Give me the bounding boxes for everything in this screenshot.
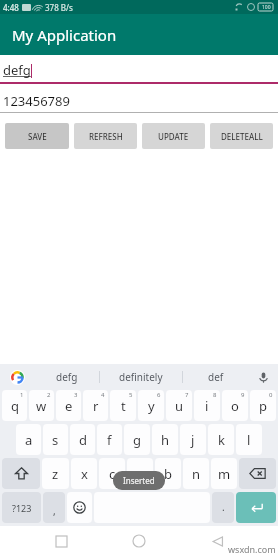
- staticText: 2: [47, 391, 51, 399]
- staticText: f: [107, 431, 112, 449]
- button[interactable]: Home: [122, 526, 156, 556]
- staticText: 8: [213, 391, 217, 399]
- staticText: m: [218, 465, 231, 483]
- button[interactable]: k: [208, 424, 234, 455]
- staticText: k: [218, 431, 225, 449]
- button[interactable]: f: [97, 424, 122, 455]
- staticText: h: [161, 431, 170, 449]
- button[interactable]: x: [71, 458, 97, 489]
- staticText: UPDATE: [158, 131, 189, 142]
- button[interactable]: c: [99, 458, 125, 489]
- staticText: 100: [262, 4, 271, 11]
- staticText: My Application: [12, 25, 117, 45]
- staticText: REFRESH: [89, 131, 123, 142]
- staticText: definitely: [119, 370, 163, 384]
- staticText: SAVE: [28, 131, 47, 142]
- button[interactable]: Shift: [2, 458, 40, 489]
- staticText: e: [65, 397, 73, 415]
- staticText: .: [222, 500, 225, 514]
- button[interactable]: Back: [200, 526, 234, 556]
- button[interactable]: z: [42, 458, 69, 489]
- button[interactable]: Google: [0, 364, 34, 390]
- staticText: y: [148, 397, 155, 415]
- staticText: defg: [3, 61, 31, 79]
- button[interactable]: Backspace: [239, 458, 276, 489]
- button[interactable]: a: [16, 424, 41, 455]
- button[interactable]: o: [222, 390, 248, 421]
- button[interactable]: ?123: [2, 492, 41, 523]
- staticText: ?123: [12, 502, 32, 514]
- staticText: defg: [56, 370, 78, 384]
- staticText: 123456789: [3, 92, 70, 110]
- button[interactable]: j: [180, 424, 206, 455]
- staticText: a: [25, 431, 33, 449]
- staticText: Inserted: [123, 475, 155, 486]
- button[interactable]: h: [152, 424, 178, 455]
- button[interactable]: t: [110, 390, 136, 421]
- button[interactable]: ,: [43, 492, 65, 523]
- staticText: t: [121, 397, 126, 415]
- button[interactable]: y: [138, 390, 164, 421]
- staticText: 5: [129, 391, 133, 399]
- staticText: d: [79, 431, 87, 449]
- button[interactable]: u: [166, 390, 192, 421]
- staticText: i: [205, 397, 209, 415]
- staticText: v: [137, 465, 144, 483]
- staticText: 4: [101, 391, 105, 399]
- staticText: 7: [185, 391, 189, 399]
- button[interactable]: .: [212, 492, 234, 523]
- staticText: 9: [241, 391, 245, 399]
- button[interactable]: Voice input: [248, 364, 278, 390]
- staticText: o: [231, 397, 239, 415]
- staticText: c: [109, 465, 116, 483]
- staticText: r: [93, 397, 99, 415]
- button[interactable]: d: [70, 424, 95, 455]
- button[interactable]: m: [211, 458, 237, 489]
- button[interactable]: REFRESH: [74, 123, 137, 149]
- staticText: s: [52, 431, 59, 449]
- button[interactable]: b: [155, 458, 181, 489]
- staticText: p: [259, 397, 267, 415]
- staticText: def: [208, 370, 224, 384]
- button[interactable]: w: [29, 390, 54, 421]
- button[interactable]: i: [194, 390, 220, 421]
- button[interactable]: n: [183, 458, 209, 489]
- button[interactable]: DELETEALL: [210, 123, 273, 149]
- staticText: j: [191, 431, 195, 449]
- button[interactable]: def: [183, 364, 248, 390]
- staticText: x: [81, 465, 88, 483]
- staticText: n: [192, 465, 201, 483]
- button[interactable]: UPDATE: [142, 123, 205, 149]
- staticText: b: [164, 465, 172, 483]
- staticText: u: [175, 397, 184, 415]
- staticText: wsxdn.com: [228, 543, 276, 555]
- staticText: l: [247, 431, 251, 449]
- staticText: ,: [53, 504, 56, 518]
- button[interactable]: q: [2, 390, 27, 421]
- staticText: DELETEALL: [221, 131, 263, 142]
- button[interactable]: e: [56, 390, 81, 421]
- button[interactable]: defg: [34, 364, 99, 390]
- button[interactable]: definitely: [100, 364, 182, 390]
- button[interactable]: g: [124, 424, 150, 455]
- staticText: q: [11, 397, 19, 415]
- staticText: w: [36, 397, 47, 415]
- staticText: 6: [157, 391, 161, 399]
- staticText: 0: [269, 391, 273, 399]
- button[interactable]: SAVE: [5, 123, 69, 149]
- staticText: 4:48: [3, 2, 19, 13]
- staticText: 378 B/s: [45, 2, 73, 13]
- staticText: g: [133, 431, 141, 449]
- button[interactable]: Emoji: [67, 492, 92, 523]
- button[interactable]: Enter: [236, 492, 276, 523]
- staticText: 1: [20, 391, 24, 399]
- button[interactable]: r: [83, 390, 108, 421]
- button[interactable]: v: [127, 458, 153, 489]
- staticText: 3: [74, 391, 78, 399]
- button[interactable]: s: [43, 424, 68, 455]
- staticText: z: [52, 465, 59, 483]
- button[interactable]: l: [236, 424, 262, 455]
- button[interactable]: Recent apps: [44, 526, 78, 556]
- button[interactable]: p: [250, 390, 276, 421]
